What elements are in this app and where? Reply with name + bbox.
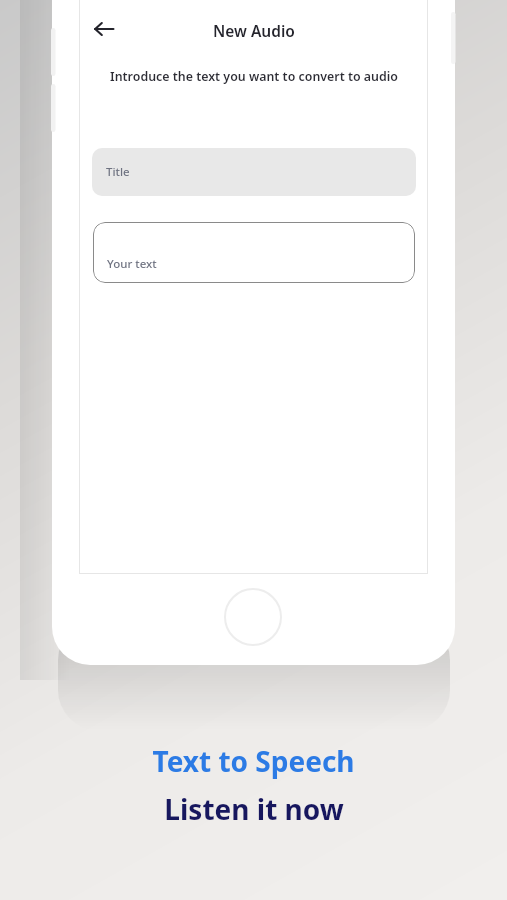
button[interactable]: Back: [88, 13, 120, 45]
staticText: Introduce the text you want to convert t…: [110, 68, 398, 85]
staticText: Text to Speech: [152, 742, 355, 780]
staticText: New Audio: [213, 20, 295, 41]
button[interactable]: Your text: [93, 222, 415, 283]
staticText: Your text: [107, 256, 157, 272]
staticText: Title: [106, 164, 130, 180]
button[interactable]: Title: [92, 148, 416, 196]
staticText: Listen it now: [164, 790, 344, 828]
